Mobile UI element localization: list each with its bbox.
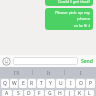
button[interactable]: Q [1,79,9,88]
staticText: A [5,90,9,96]
staticText: F [38,90,41,96]
staticText: I [80,70,82,76]
button[interactable]: K [75,90,84,96]
button[interactable]: W [10,79,18,88]
button[interactable]: T [37,79,45,88]
staticText: E [22,80,25,87]
button[interactable]: F [35,90,44,96]
button[interactable]: E [19,79,27,88]
staticText: D [27,90,31,96]
button[interactable]: P [86,79,95,88]
staticText: I [70,80,72,87]
staticText: I'll [14,70,19,76]
staticText: J [69,90,71,96]
button[interactable]: G [45,90,54,96]
button[interactable]: Emoji [2,57,11,66]
staticText: S [17,90,20,96]
button[interactable]: U [56,79,65,88]
button[interactable]: I [66,79,75,88]
button[interactable]: L [85,90,94,96]
staticText: T [40,80,43,87]
staticText: Could I get that? [57,0,90,5]
staticText: H [58,90,62,96]
staticText: Please pick up my phone [48,10,90,22]
staticText: U [59,80,63,87]
staticText: G [48,90,52,96]
staticText: L [88,90,91,96]
button[interactable]: R [28,79,36,88]
button[interactable]: Could I get that? [45,0,93,6]
staticText: on be Hi :) [73,23,90,28]
staticText: O [79,80,83,87]
button[interactable]: Y [46,79,55,88]
button[interactable]: S [13,90,23,96]
button[interactable]: It [33,67,64,78]
button[interactable]: J [65,90,74,96]
button[interactable]: Send [80,56,94,66]
staticText: K [78,90,82,96]
staticText: W [12,80,17,87]
button[interactable]: H [55,90,64,96]
staticText: Y [49,80,52,87]
button[interactable]: I'll [0,67,32,78]
button[interactable]: Please pick up my phone [45,8,93,30]
staticText: R [30,80,34,87]
staticText: Q [3,80,7,87]
staticText: Send [81,58,93,65]
staticText: It [47,70,51,76]
button[interactable]: I [65,67,96,78]
button[interactable]: A [2,90,12,96]
staticText: P [89,80,93,87]
button[interactable]: D [24,90,34,96]
button[interactable]: O [76,79,85,88]
button[interactable] [13,57,78,65]
